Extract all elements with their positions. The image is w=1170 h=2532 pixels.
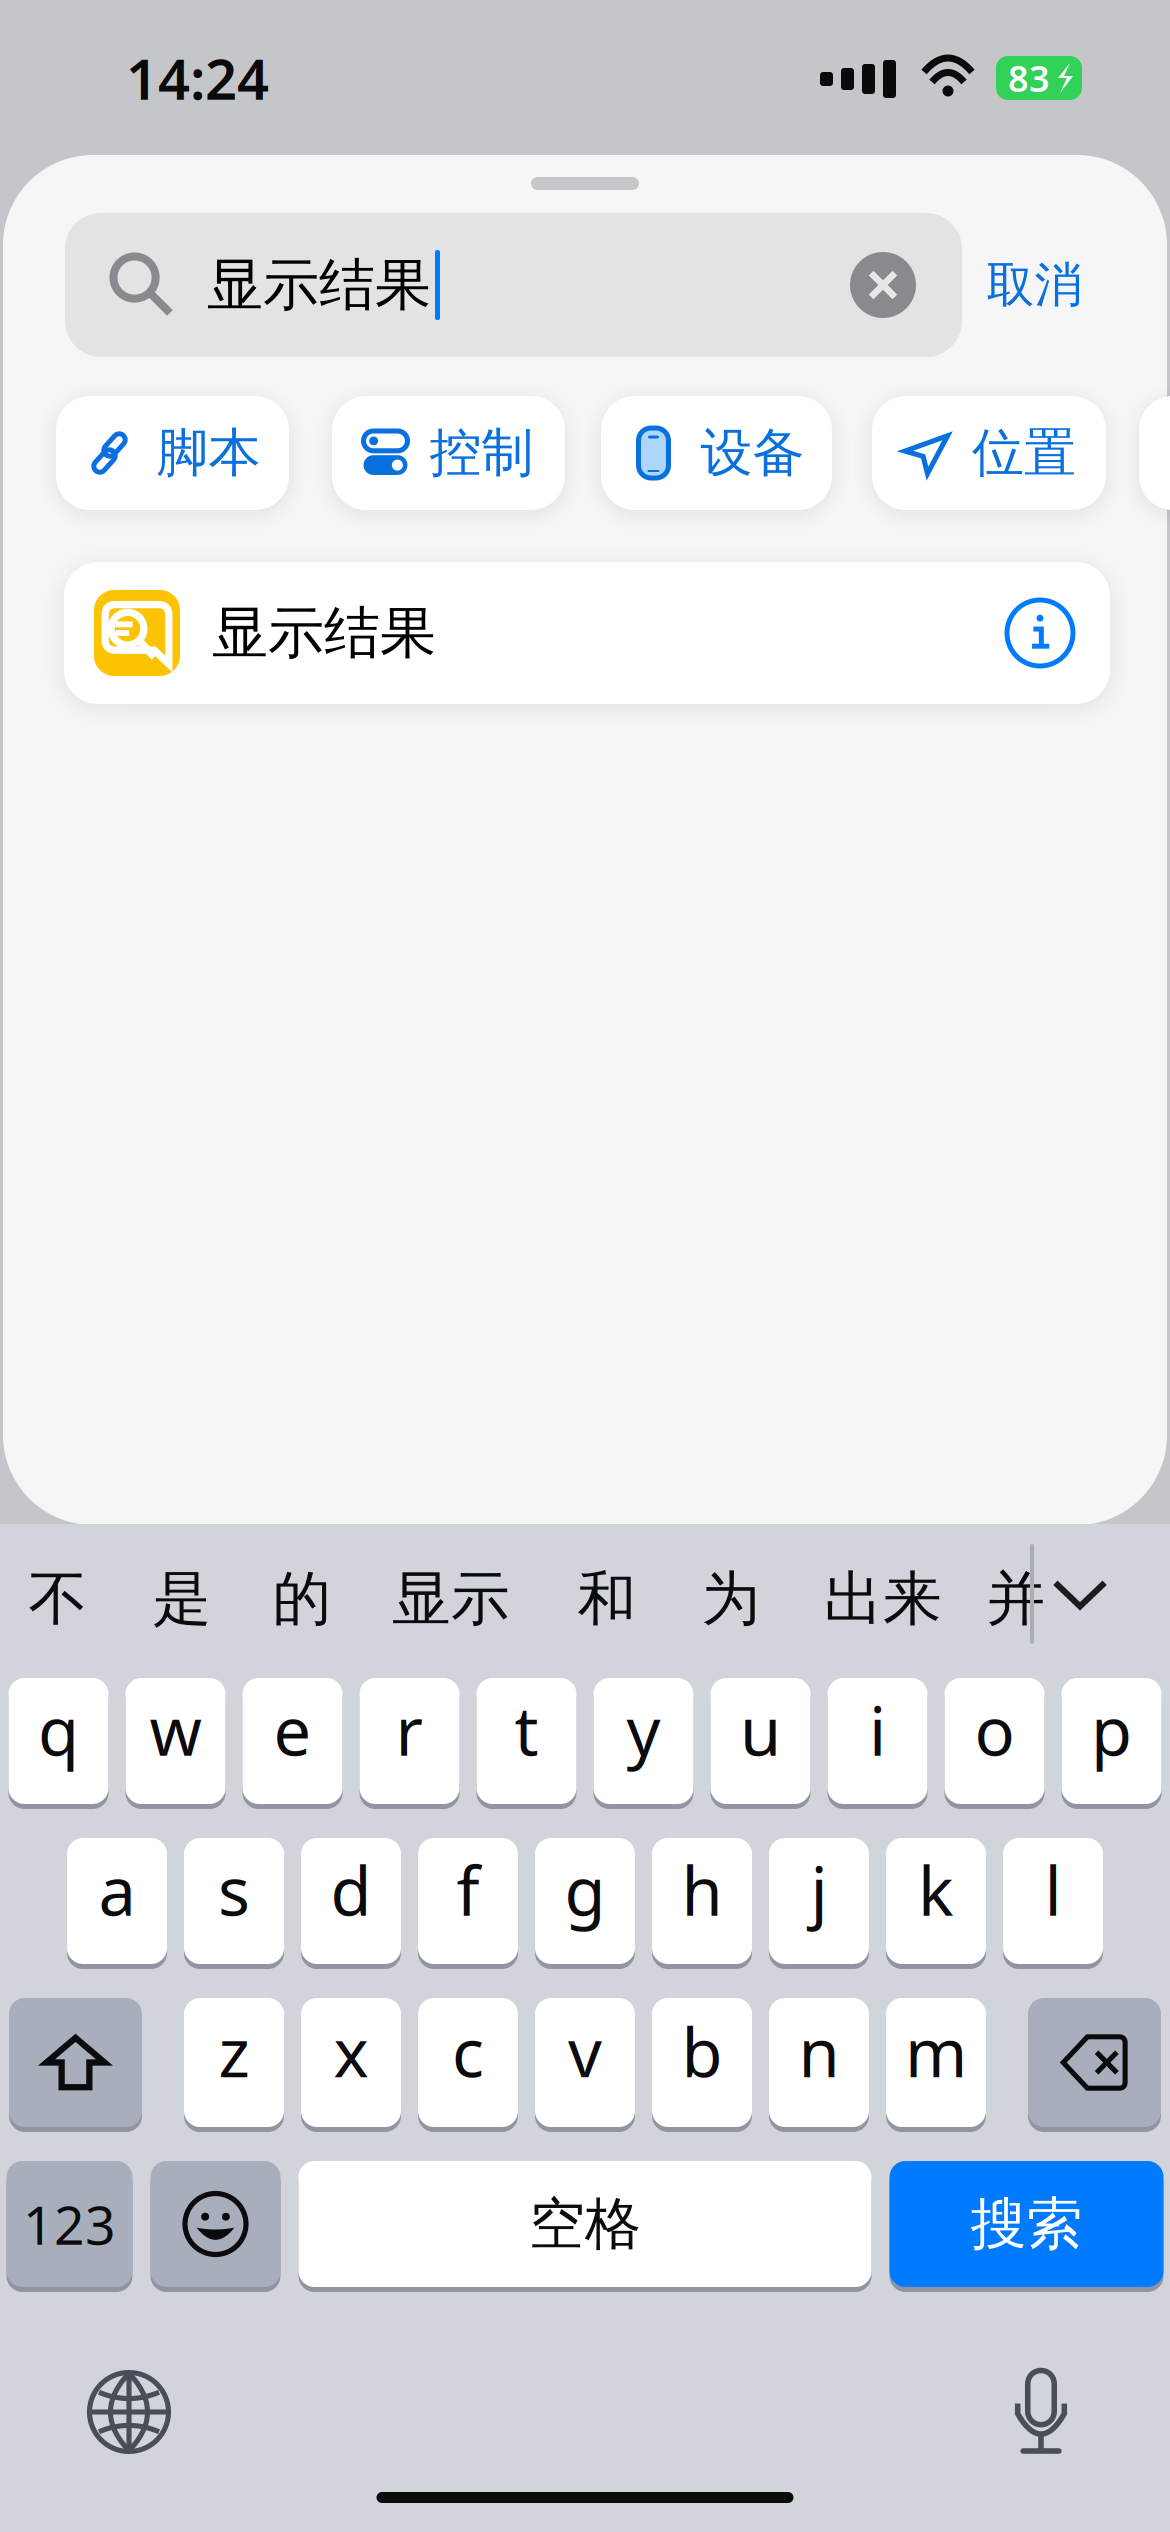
button[interactable]: Shift [9,1995,142,2129]
button[interactable]: n [769,1995,869,2129]
button[interactable]: r [359,1675,459,1806]
button[interactable]: t [476,1675,576,1806]
staticText: p [1091,1686,1132,1774]
staticText: 和 [577,1563,636,1635]
button[interactable]: Dictation [971,2332,1111,2492]
button[interactable]: k [886,1835,986,1966]
staticText: 取消 [986,255,1082,314]
staticText: o [974,1686,1014,1774]
button[interactable]: 为 [668,1519,794,1669]
button[interactable]: 不 [0,1519,116,1669]
staticText: 显示结果 [207,251,431,319]
staticText: 是 [152,1563,211,1635]
button[interactable]: x [301,1995,401,2129]
button[interactable]: b [652,1995,752,2129]
button[interactable]: a [67,1835,167,1966]
button[interactable]: Clear text [850,252,962,318]
staticText: 并 [986,1563,1045,1635]
staticText: b [681,2007,722,2096]
button[interactable]: u [710,1675,810,1806]
staticText: 不 [28,1563,87,1635]
staticText: 14:24 [126,41,269,115]
button[interactable]: q [8,1675,108,1806]
staticText: 的 [272,1563,331,1635]
button[interactable]: h [652,1835,752,1966]
button[interactable]: 控制 [332,396,565,510]
button[interactable]: w [125,1675,225,1806]
staticText: n [798,2007,839,2096]
staticText: s [218,1846,250,1934]
staticText: 显示 [392,1563,510,1635]
staticText: i [869,1686,886,1774]
staticText: j [810,1846,827,1934]
button[interactable]: l [1003,1835,1103,1966]
staticText: 搜索 [970,2190,1082,2258]
button[interactable]: More candidates [1034,1519,1126,1669]
staticText: 脚本 [156,421,260,485]
staticText: t [514,1686,538,1774]
button[interactable]: i [827,1675,927,1806]
button[interactable]: Emoji [150,2158,280,2289]
staticText: 空格 [529,2190,641,2258]
staticText: c [452,2007,484,2096]
button[interactable]: 显示结果 [64,562,1110,704]
button[interactable]: 出来 [794,1519,972,1669]
staticText: 显示结果 [212,599,436,667]
staticText: 为 [701,1563,760,1635]
staticText: x [333,2007,368,2096]
button[interactable]: 位置 [872,396,1106,510]
button[interactable]: 和 [546,1519,668,1669]
staticText: 123 [23,2189,116,2259]
button[interactable]: z [184,1995,284,2129]
staticText: w [149,1686,201,1774]
staticText: q [38,1686,79,1774]
button[interactable]: 的 [248,1519,356,1669]
button[interactable]: e [242,1675,342,1806]
staticText: g [564,1846,605,1934]
button[interactable]: 123 [6,2158,132,2289]
staticText: 控制 [429,421,533,485]
button[interactable]: 脚本 [56,396,289,510]
button[interactable]: d [301,1835,401,1966]
button[interactable]: 搜索 [889,2158,1163,2289]
staticText: h [681,1846,722,1934]
button[interactable]: 显示 [356,1519,546,1669]
button[interactable]: j [769,1835,869,1966]
button[interactable]: 媒体 [1139,396,1170,510]
button[interactable]: 是 [116,1519,248,1669]
button[interactable]: p [1061,1675,1161,1806]
staticText: f [456,1846,479,1934]
staticText: a [98,1846,135,1934]
button[interactable]: 空格 [298,2158,871,2289]
staticText: z [218,2007,249,2096]
staticText: 位置 [972,421,1076,485]
staticText: u [740,1686,781,1774]
button[interactable]: Switch keyboard [59,2332,199,2492]
button[interactable]: s [184,1835,284,1966]
staticText: v [568,2007,602,2096]
button[interactable]: 取消 [962,213,1107,357]
staticText: l [1044,1846,1061,1934]
button[interactable]: 设备 [601,396,832,510]
staticText: y [626,1686,660,1774]
staticText: e [273,1686,311,1774]
button[interactable]: 并 [972,1519,1060,1669]
button[interactable]: f [418,1835,518,1966]
button[interactable]: g [535,1835,635,1966]
button[interactable]: c [418,1995,518,2129]
staticText: m [905,2007,967,2096]
button[interactable]: o [944,1675,1044,1806]
staticText: 设备 [700,421,804,485]
staticText: 83 [1008,54,1050,102]
staticText: r [395,1686,423,1774]
button[interactable]: m [886,1995,986,2129]
button[interactable]: Delete [1028,1995,1161,2129]
button[interactable]: v [535,1995,635,2129]
staticText: d [330,1846,371,1934]
staticText: k [918,1846,954,1934]
staticText: 出来 [824,1563,942,1635]
button[interactable]: y [593,1675,693,1806]
